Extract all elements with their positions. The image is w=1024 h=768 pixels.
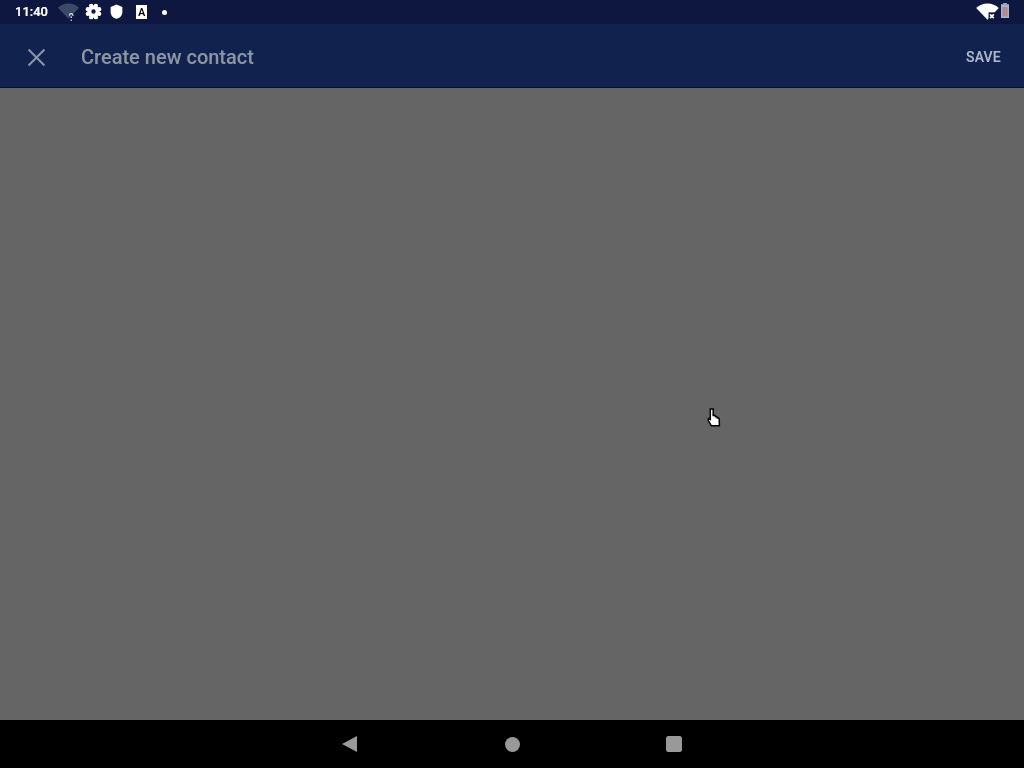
button[interactable]: Back bbox=[325, 720, 373, 768]
staticText: A bbox=[138, 6, 146, 19]
button[interactable]: SAVE bbox=[946, 37, 1021, 77]
staticText: 11:40 bbox=[15, 4, 48, 19]
staticText: Create new contact bbox=[81, 45, 254, 68]
button[interactable]: Recent apps bbox=[650, 720, 698, 768]
button[interactable]: Close bbox=[16, 37, 56, 77]
staticText: SAVE bbox=[966, 49, 1001, 65]
button[interactable]: Home bbox=[488, 720, 536, 768]
